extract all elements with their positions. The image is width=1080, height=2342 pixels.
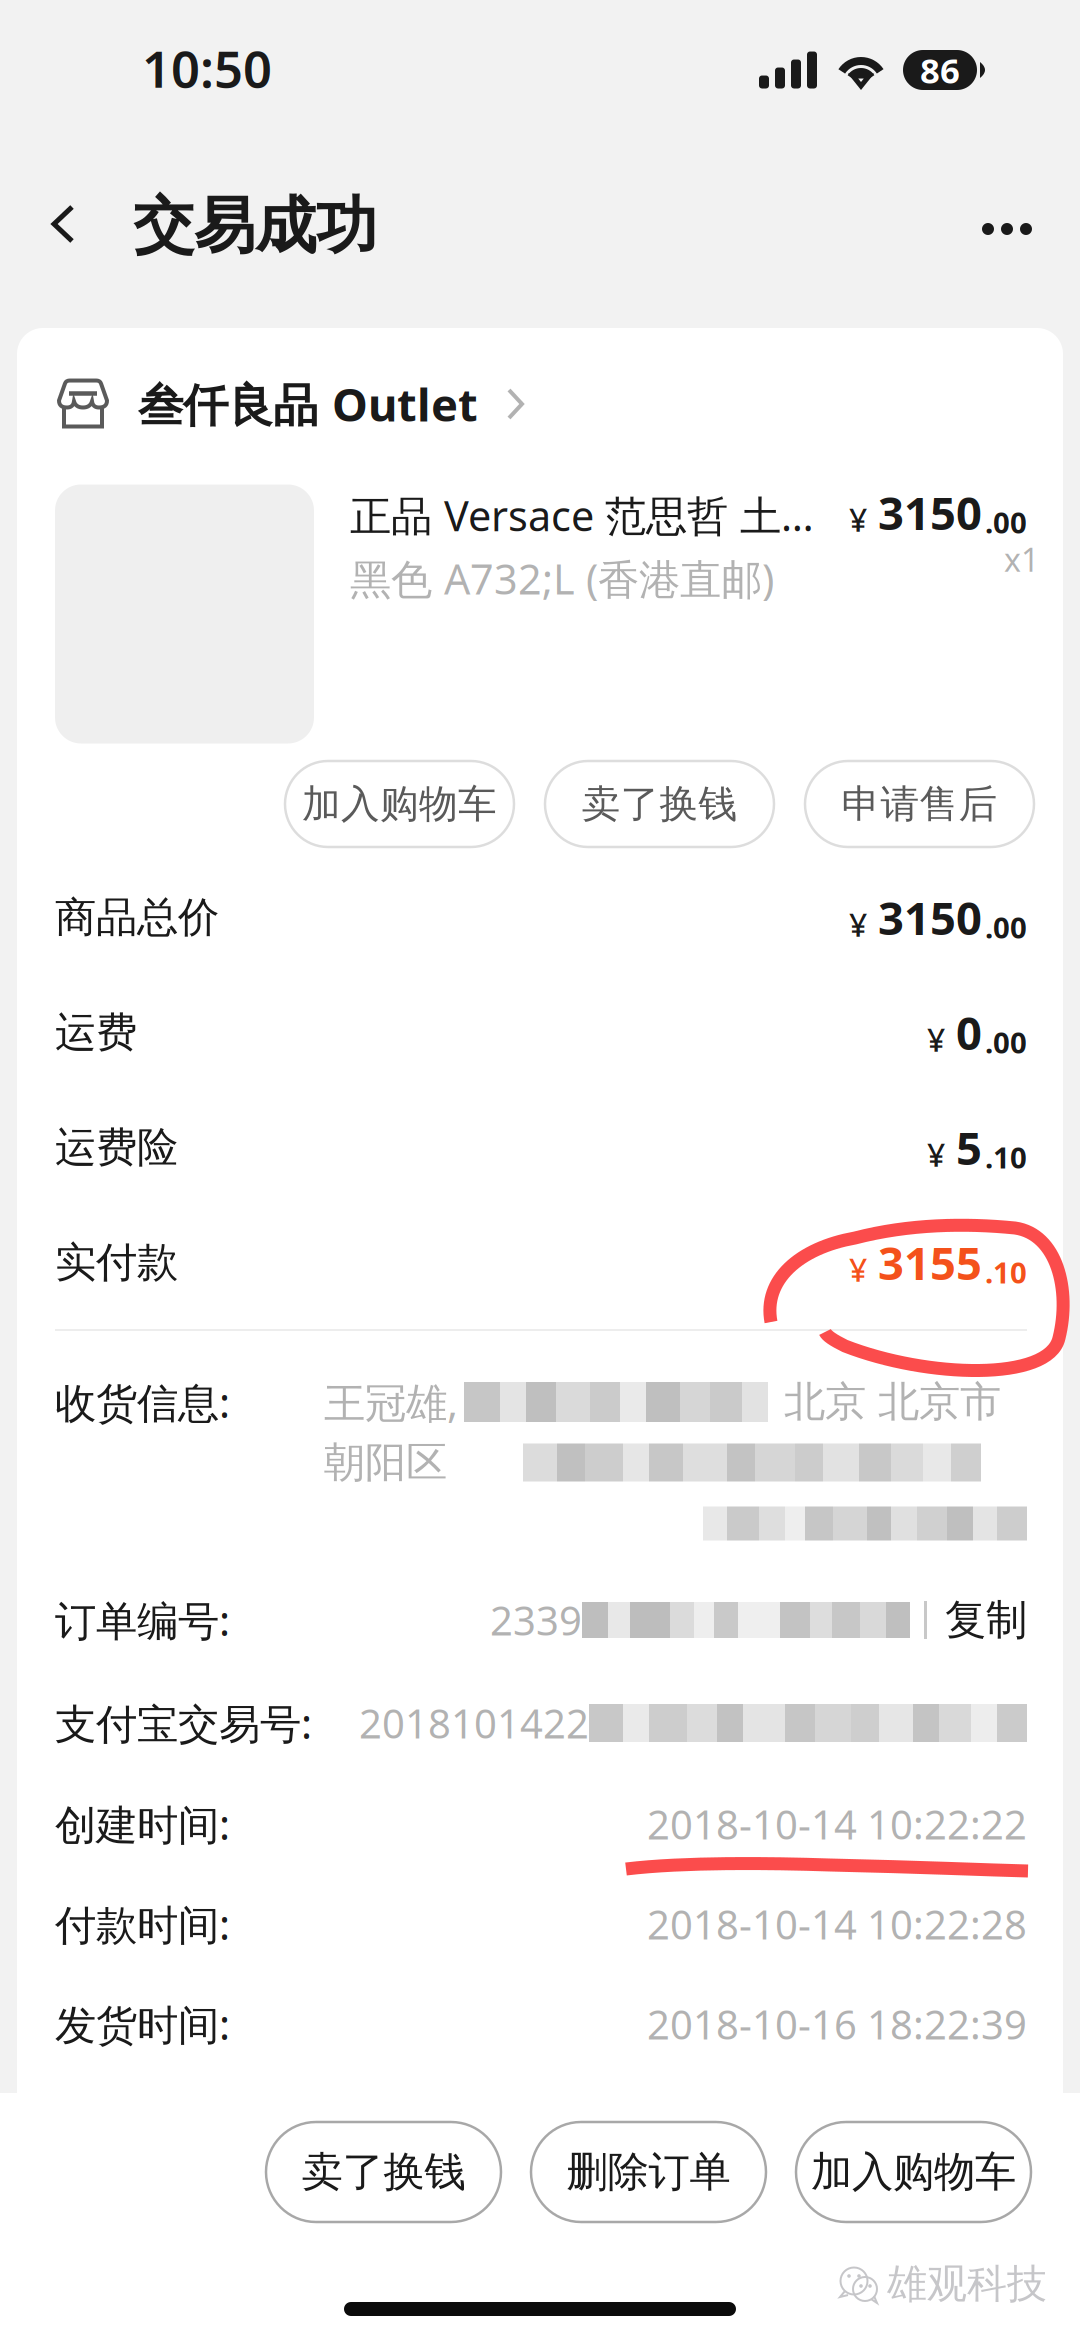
- staticText: 订单编号:: [55, 1593, 230, 1647]
- button[interactable]: Back: [27, 158, 99, 290]
- staticText: ¥: [849, 498, 867, 541]
- staticText: 3150: [878, 887, 982, 948]
- staticText: ¥: [849, 1248, 867, 1291]
- staticText: ¥: [927, 1018, 945, 1061]
- staticText: 86: [920, 47, 960, 93]
- staticText: 雄观科技: [887, 2259, 1047, 2308]
- staticText: 收货信息:: [55, 1375, 230, 1429]
- button[interactable]: 加入购物车: [285, 761, 514, 847]
- button[interactable]: 申请售后: [805, 761, 1034, 847]
- staticText: .00: [985, 908, 1027, 947]
- staticText: 商品总价: [55, 892, 219, 943]
- staticText: 加入购物车: [811, 2147, 1016, 2197]
- staticText: 5: [956, 1117, 982, 1178]
- staticText: x1: [1004, 538, 1039, 581]
- staticText: 3155: [878, 1232, 982, 1293]
- staticText: 2018-10-14 10:22:22: [647, 1797, 1027, 1850]
- staticText: 北京 北京市: [784, 1377, 1001, 1427]
- staticText: ¥: [849, 903, 867, 946]
- staticText: 加入购物车: [302, 780, 497, 828]
- staticText: .00: [985, 503, 1027, 542]
- staticText: 实付款: [55, 1237, 178, 1288]
- button[interactable]: More options: [953, 158, 1061, 290]
- staticText: 复制: [945, 1595, 1027, 1645]
- staticText: .10: [985, 1253, 1027, 1292]
- staticText: 运费: [55, 1007, 137, 1058]
- staticText: .00: [985, 1023, 1027, 1062]
- staticText: 10:50: [142, 34, 272, 102]
- staticText: 黑色 A732;L (香港直邮): [350, 551, 774, 606]
- button[interactable]: 删除订单: [531, 2122, 766, 2222]
- staticText: 申请售后: [841, 780, 997, 828]
- staticText: 0: [956, 1002, 982, 1063]
- staticText: 支付宝交易号:: [55, 1696, 312, 1750]
- staticText: 叁仟良品 Outlet: [138, 374, 478, 434]
- staticText: 2339: [490, 1593, 582, 1646]
- button[interactable]: 卖了换钱: [545, 761, 774, 847]
- button[interactable]: 卖了换钱: [266, 2122, 501, 2222]
- button[interactable]: 复制: [945, 1595, 1027, 1645]
- staticText: 发货时间:: [55, 1997, 230, 2051]
- staticText: ¥: [927, 1133, 945, 1176]
- staticText: 3150: [878, 482, 982, 543]
- button[interactable]: 加入购物车: [796, 2122, 1031, 2222]
- staticText: 交易成功: [133, 188, 377, 264]
- staticText: 卖了换钱: [301, 2147, 465, 2197]
- staticText: 运费险: [55, 1122, 178, 1173]
- staticText: 2018-10-14 10:22:28: [647, 1897, 1027, 1950]
- staticText: 删除订单: [566, 2147, 730, 2197]
- staticText: 付款时间:: [55, 1897, 230, 1951]
- staticText: 正品 Versace 范思哲 土…: [350, 488, 814, 543]
- staticText: 创建时间:: [55, 1797, 230, 1851]
- staticText: .10: [985, 1138, 1027, 1177]
- staticText: 朝阳区: [324, 1437, 447, 1488]
- staticText: 2018-10-16 18:22:39: [647, 1997, 1027, 2050]
- button[interactable]: 叁仟良品 Outlet: [17, 328, 1063, 480]
- staticText: 2018101422: [359, 1696, 589, 1749]
- staticText: 卖了换钱: [581, 780, 737, 828]
- staticText: 王冠雄,: [324, 1375, 458, 1429]
